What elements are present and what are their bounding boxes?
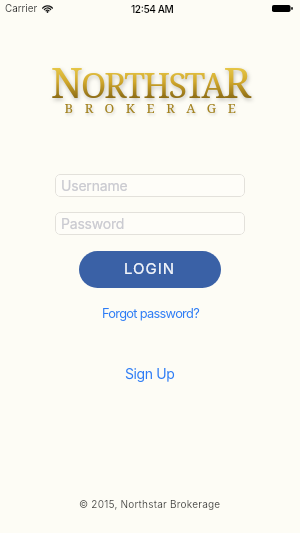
button[interactable]: Sign Up bbox=[121, 361, 179, 386]
staticText: BROKERAGE bbox=[6, 99, 300, 117]
staticText: Carrier bbox=[5, 3, 38, 15]
staticText: NORTHSTAR bbox=[0, 53, 300, 110]
staticText: Username bbox=[61, 177, 128, 194]
staticText: Password bbox=[61, 215, 125, 232]
staticText: © 2015, Northstar Brokerage bbox=[79, 498, 221, 510]
staticText: 12:54 AM bbox=[131, 3, 174, 15]
button[interactable]: Username bbox=[55, 174, 245, 197]
button[interactable]: LOGIN bbox=[79, 251, 221, 288]
staticText: Forgot password? bbox=[102, 306, 199, 321]
button[interactable]: Forgot password? bbox=[98, 302, 203, 325]
staticText: Sign Up bbox=[125, 365, 175, 382]
button[interactable]: Password bbox=[55, 212, 245, 235]
staticText: LOGIN bbox=[124, 259, 176, 277]
